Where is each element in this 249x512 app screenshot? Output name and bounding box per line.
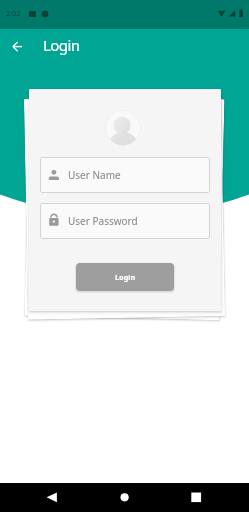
- staticText: 2:02: [6, 8, 21, 18]
- button[interactable]: User Name: [40, 157, 210, 193]
- button[interactable]: Home: [107, 483, 143, 512]
- button[interactable]: Recent apps: [178, 483, 214, 512]
- button[interactable]: Back: [34, 483, 70, 512]
- staticText: User Password: [68, 214, 138, 228]
- button[interactable]: User Password: [40, 203, 210, 239]
- button[interactable]: Login: [76, 263, 174, 291]
- staticText: Login: [115, 272, 136, 282]
- staticText: Login: [43, 35, 80, 55]
- staticText: User Name: [68, 168, 121, 182]
- button[interactable]: Back: [7, 37, 27, 57]
